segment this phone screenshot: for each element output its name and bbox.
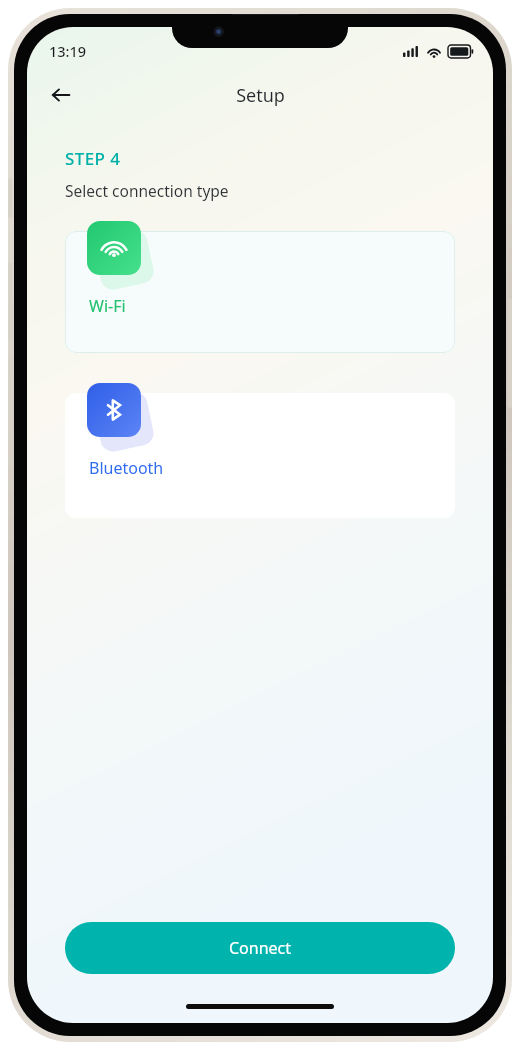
staticText: Bluetooth bbox=[89, 457, 164, 479]
staticText: Setup bbox=[236, 83, 285, 108]
button[interactable]: Bluetooth bbox=[87, 383, 141, 437]
staticText: Select connection type bbox=[65, 180, 229, 201]
button[interactable]: Wi-Fi bbox=[65, 231, 455, 353]
button[interactable]: Back bbox=[41, 75, 81, 115]
staticText: 13:19 bbox=[49, 41, 87, 61]
button[interactable]: Connect bbox=[65, 922, 455, 974]
staticText: Connect bbox=[229, 937, 292, 959]
button[interactable]: Wi-Fi bbox=[87, 221, 141, 275]
staticText: STEP 4 bbox=[65, 147, 121, 170]
button[interactable]: Bluetooth bbox=[65, 393, 455, 518]
staticText: Wi-Fi bbox=[89, 295, 126, 317]
